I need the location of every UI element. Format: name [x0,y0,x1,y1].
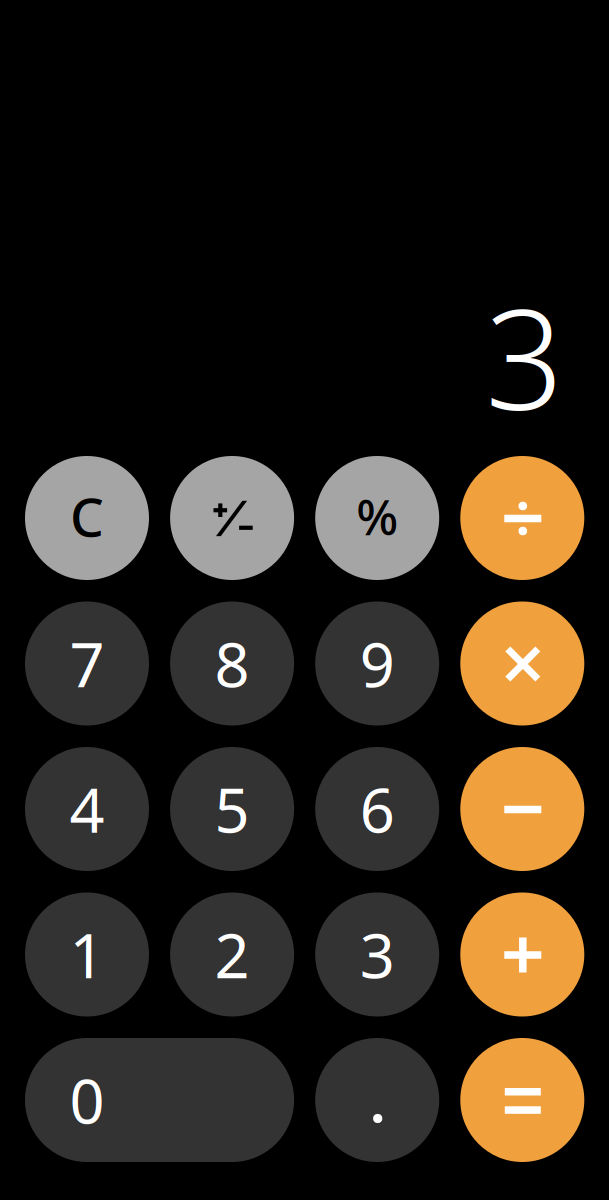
staticText: 6 [360,768,395,850]
button[interactable]: Multiply [460,601,584,725]
button[interactable]: Decimal Point [315,1038,439,1162]
button[interactable]: 3 [315,892,439,1016]
staticText: 3 [485,266,563,448]
button[interactable]: Divide [460,456,584,580]
staticText: 0 [69,1059,104,1141]
staticText: 8 [215,623,250,704]
staticText: C [70,481,104,551]
staticText: 9 [360,623,395,704]
button[interactable]: 0 [25,1038,294,1162]
staticText: 3 [360,914,395,995]
button[interactable]: C [25,456,149,580]
staticText: 2 [215,914,250,995]
staticText: 7 [69,623,104,704]
button[interactable]: Minus [460,747,584,871]
button[interactable]: 2 [170,892,294,1016]
button[interactable]: 8 [170,601,294,725]
staticText: 5 [215,768,250,850]
button[interactable]: Plus Minus [170,456,294,580]
staticText: 4 [69,768,104,850]
button[interactable]: 1 [25,892,149,1016]
button[interactable]: 9 [315,601,439,725]
button[interactable]: 6 [315,747,439,871]
button[interactable]: 5 [170,747,294,871]
button[interactable]: 7 [25,601,149,725]
button[interactable]: % [315,456,439,580]
button[interactable]: 4 [25,747,149,871]
button[interactable]: Equals [460,1038,584,1162]
button[interactable]: Plus [460,892,584,1016]
staticText: % [356,483,398,549]
staticText: 1 [69,914,104,995]
